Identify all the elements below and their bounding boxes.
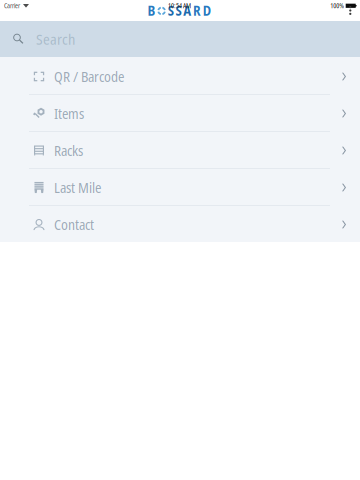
staticText: 100% <box>330 1 344 10</box>
staticText: B <box>147 1 155 20</box>
staticText: Items <box>54 104 84 123</box>
button[interactable]: QR / Barcode <box>0 57 360 94</box>
button[interactable]: Last Mile <box>0 168 360 205</box>
staticText: 10:54 AM <box>168 1 191 10</box>
staticText: D <box>203 1 211 20</box>
staticText: QR / Barcode <box>54 67 124 86</box>
staticText: Racks <box>54 141 83 160</box>
staticText: A <box>183 1 191 20</box>
button[interactable]: Racks <box>0 131 360 168</box>
staticText: R <box>193 1 201 20</box>
staticText: Last Mile <box>54 178 101 197</box>
staticText: Search <box>36 29 75 49</box>
button[interactable]: Items <box>0 94 360 131</box>
staticText: Carrier <box>4 1 20 10</box>
staticText: S <box>175 1 181 20</box>
button[interactable]: More options <box>343 3 357 17</box>
button[interactable]: Contact <box>0 205 360 242</box>
staticText: S <box>168 1 174 20</box>
staticText: Contact <box>54 215 94 234</box>
